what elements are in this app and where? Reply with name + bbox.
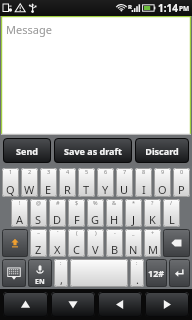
staticText: _ xyxy=(132,229,135,236)
staticText: 4 xyxy=(66,168,70,175)
staticText: * xyxy=(132,199,136,206)
staticText: ) xyxy=(95,229,97,236)
staticText: 12# xyxy=(148,267,165,279)
staticText: P xyxy=(178,182,185,197)
button[interactable]: Send xyxy=(3,138,51,163)
button[interactable]: 5 xyxy=(78,168,95,197)
staticText: - xyxy=(114,229,116,236)
staticText: + xyxy=(151,229,155,236)
button[interactable]: 7 xyxy=(116,168,133,197)
staticText: Y xyxy=(102,182,109,197)
button[interactable]: 4 xyxy=(59,168,76,197)
staticText: Message xyxy=(6,22,52,37)
button[interactable]: + xyxy=(144,229,161,257)
button[interactable]: ~ xyxy=(30,229,47,257)
staticText: K xyxy=(149,212,156,227)
button[interactable]: / xyxy=(163,199,180,227)
staticText: 2 xyxy=(28,168,32,175)
button[interactable]: ! xyxy=(11,199,28,227)
button[interactable] xyxy=(70,259,128,287)
staticText: E xyxy=(45,182,52,197)
staticText: T xyxy=(83,182,90,197)
staticText: 3 xyxy=(47,168,51,175)
staticText: Discard xyxy=(145,145,179,157)
staticText: # xyxy=(56,199,60,206)
staticText: Save as draft xyxy=(64,145,122,157)
staticText: Send xyxy=(16,145,38,157)
button[interactable]: Save as draft xyxy=(54,138,132,163)
button[interactable]: Up xyxy=(3,292,48,317)
staticText: R xyxy=(64,182,71,197)
button[interactable]: Shift xyxy=(2,229,28,257)
staticText: ` xyxy=(57,229,59,236)
button[interactable]: _ xyxy=(125,229,142,257)
button[interactable]: : xyxy=(130,259,144,287)
button[interactable]: 9 xyxy=(154,168,171,197)
staticText: ! xyxy=(19,199,21,206)
staticText: Q xyxy=(6,182,15,197)
button[interactable]: 3 xyxy=(40,168,57,197)
button[interactable]: ? xyxy=(144,199,161,227)
staticText: D xyxy=(53,212,62,227)
staticText: H xyxy=(110,212,119,227)
staticText: @ xyxy=(36,199,41,206)
staticText: M xyxy=(148,242,158,257)
button[interactable]: 8 xyxy=(135,168,152,197)
staticText: U xyxy=(120,182,129,197)
staticText: EN xyxy=(35,277,45,287)
button[interactable]: # xyxy=(49,199,66,227)
button[interactable]: : xyxy=(54,259,68,287)
staticText: N xyxy=(129,242,138,257)
button[interactable]: Numbers and symbols xyxy=(146,259,167,287)
button[interactable]: 2 xyxy=(21,168,38,197)
staticText: R xyxy=(128,3,132,11)
button[interactable]: ( xyxy=(68,229,85,257)
staticText: ? xyxy=(151,199,154,206)
staticText: X xyxy=(54,242,61,257)
staticText: & xyxy=(112,199,117,206)
staticText: : xyxy=(136,259,138,266)
button[interactable]: Discard xyxy=(135,138,189,163)
staticText: B xyxy=(111,242,119,257)
button[interactable]: Right xyxy=(145,292,189,317)
staticText: . xyxy=(136,272,139,287)
button[interactable]: 0 xyxy=(173,168,190,197)
button[interactable]: * xyxy=(125,199,142,227)
button[interactable]: Message xyxy=(1,16,191,135)
button[interactable]: ) xyxy=(87,229,104,257)
staticText: V xyxy=(92,242,99,257)
staticText: Z xyxy=(35,242,42,257)
button[interactable]: ` xyxy=(49,229,66,257)
staticText: S xyxy=(35,212,42,227)
button[interactable]: 1 xyxy=(2,168,19,197)
staticText: 7 xyxy=(123,168,127,175)
staticText: 6 xyxy=(104,168,108,175)
button[interactable]: $ xyxy=(68,199,85,227)
button[interactable]: Left xyxy=(98,292,142,317)
staticText: O xyxy=(158,182,167,197)
staticText: J xyxy=(132,212,136,227)
button[interactable]: % xyxy=(87,199,104,227)
button[interactable]: Voice input English xyxy=(28,259,52,287)
button[interactable]: @ xyxy=(30,199,47,227)
button[interactable]: Backspace xyxy=(163,229,190,257)
staticText: ~ xyxy=(37,229,41,236)
staticText: PM xyxy=(179,4,190,13)
button[interactable]: Switch keyboard xyxy=(2,259,26,287)
staticText: W xyxy=(24,182,35,197)
staticText: 1 xyxy=(9,168,13,175)
staticText: $ xyxy=(75,199,79,206)
staticText: / xyxy=(170,199,173,206)
button[interactable]: Down xyxy=(51,292,95,317)
staticText: F xyxy=(74,212,80,227)
button[interactable]: 6 xyxy=(97,168,114,197)
button[interactable]: - xyxy=(106,229,123,257)
staticText: , xyxy=(60,272,63,287)
staticText: A xyxy=(16,212,24,227)
staticText: 0 xyxy=(180,168,184,175)
button[interactable]: Enter xyxy=(169,259,190,287)
button[interactable]: & xyxy=(106,199,123,227)
staticText: 5 xyxy=(85,168,89,175)
staticText: : xyxy=(60,259,62,266)
staticText: 9 xyxy=(161,168,165,175)
